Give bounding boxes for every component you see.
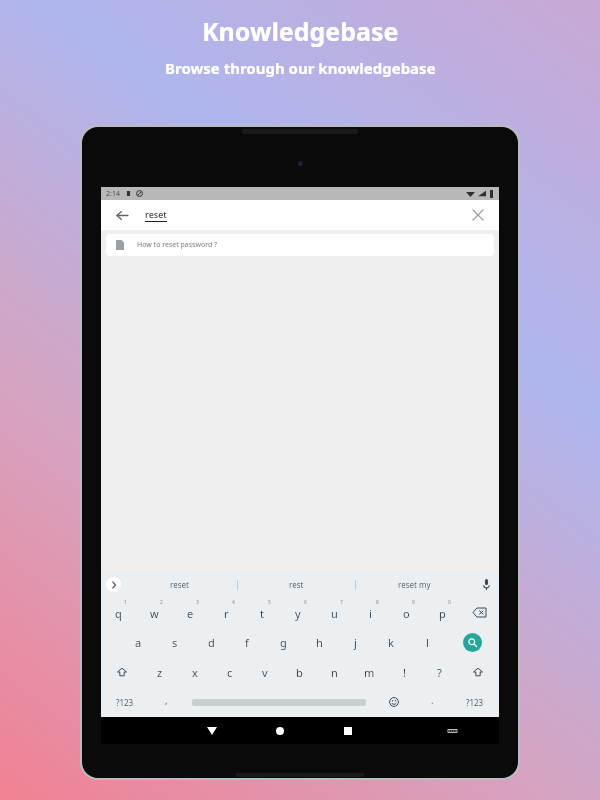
button[interactable]: b [282,657,317,687]
staticText: reset my [398,579,431,590]
staticText: Browse through our knowledgebase [165,58,436,78]
staticText: 9 [412,599,415,606]
staticText: y [295,606,301,621]
button[interactable]: d [193,627,229,657]
button[interactable]: k [373,627,409,657]
button[interactable]: 7 [316,597,352,627]
button[interactable]: Emoji [373,687,415,717]
staticText: ?123 [466,697,484,708]
staticText: ?123 [116,697,134,708]
staticText: p [439,606,446,621]
button[interactable]: 2 [136,597,172,627]
staticText: x [192,665,198,680]
button[interactable]: l [409,627,445,657]
staticText: n [331,665,338,680]
button[interactable]: 4 [208,597,244,627]
staticText: rest [289,579,304,590]
button[interactable]: 6 [280,597,316,627]
staticText: 7 [340,599,343,606]
button[interactable]: reset my [356,572,473,597]
button[interactable]: 1 [101,597,136,627]
staticText: 2 [160,599,163,606]
button[interactable]: c [212,657,247,687]
button[interactable]: n [317,657,352,687]
button[interactable]: Shift [457,657,499,687]
button[interactable]: 3 [172,597,208,627]
button[interactable]: f [229,627,265,657]
button[interactable]: Clear [467,204,489,226]
button[interactable]: j [337,627,373,657]
staticText: reset [145,208,167,220]
staticText: h [316,635,323,650]
staticText: d [208,635,215,650]
button[interactable]: ! [387,657,422,687]
button[interactable]: Space [184,687,373,717]
button[interactable]: z [142,657,177,687]
button[interactable]: 8 [352,597,388,627]
staticText: e [187,606,194,621]
staticText: l [426,635,429,650]
button[interactable]: Back [194,717,230,744]
staticText: 4 [232,599,235,606]
button[interactable]: More suggestions [106,577,121,592]
staticText: , [165,694,168,706]
staticText: 2:14 [106,189,120,199]
button[interactable]: Switch keyboard [434,717,470,744]
staticText: . [431,694,434,706]
staticText: i [369,606,372,621]
button[interactable]: 9 [388,597,424,627]
button[interactable]: ? [422,657,457,687]
staticText: k [388,635,394,650]
staticText: o [403,606,410,621]
button[interactable]: Search [445,627,499,657]
staticText: q [115,606,122,621]
staticText: j [354,635,357,650]
button[interactable]: 0 [424,597,460,627]
button[interactable]: How to reset password ? [106,234,494,256]
staticText: reset [170,579,189,590]
staticText: u [331,606,338,621]
button[interactable]: Home [262,717,298,744]
button[interactable]: Backspace [460,597,499,627]
button[interactable]: . [415,687,450,717]
staticText: r [224,606,229,621]
staticText: b [296,665,303,680]
button[interactable]: rest [238,572,355,597]
staticText: s [172,635,178,650]
staticText: a [135,635,142,650]
button[interactable]: , [149,687,184,717]
staticText: Knowledgebase [202,14,399,48]
staticText: w [150,606,159,621]
staticText: 1 [124,599,127,606]
button[interactable]: ?123 [450,687,499,717]
button[interactable]: Recents [330,717,366,744]
button[interactable]: Back [111,204,133,226]
staticText: v [262,665,268,680]
staticText: c [227,665,233,680]
staticText: f [245,635,249,650]
button[interactable]: Shift [101,657,142,687]
button[interactable]: ?123 [101,687,149,717]
staticText: ! [403,665,406,680]
button[interactable]: s [157,627,193,657]
button[interactable]: reset [121,572,237,597]
button[interactable]: x [177,657,212,687]
button[interactable]: h [301,627,337,657]
staticText: g [280,635,287,650]
staticText: t [260,606,264,621]
button[interactable]: g [265,627,301,657]
button[interactable]: m [352,657,387,687]
staticText: 0 [448,599,451,606]
button[interactable]: Voice input [473,572,499,597]
staticText: 3 [196,599,199,606]
staticText: ? [437,665,442,680]
button[interactable]: a [120,627,157,657]
staticText: How to reset password ? [137,240,218,250]
staticText: 8 [376,599,379,606]
button[interactable]: 5 [244,597,280,627]
staticText: z [157,665,163,680]
button[interactable]: v [247,657,282,687]
staticText: 5 [268,599,271,606]
staticText: m [364,665,375,680]
staticText: 6 [304,599,307,606]
